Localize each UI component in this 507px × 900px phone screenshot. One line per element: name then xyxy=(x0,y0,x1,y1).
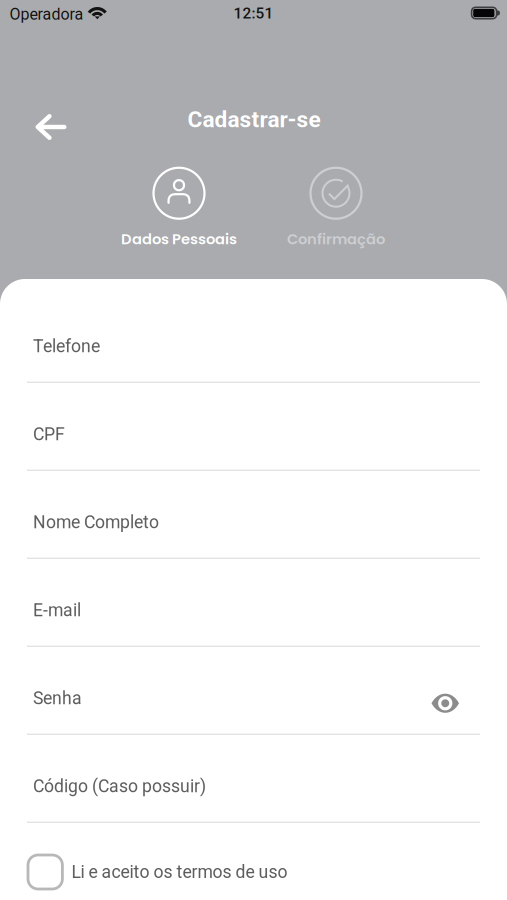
staticText: Operadora xyxy=(9,5,83,24)
staticText: Código (Caso possuir) xyxy=(33,776,206,797)
staticText: Telefone xyxy=(33,336,100,357)
button[interactable]: Voltar xyxy=(26,104,76,150)
button[interactable]: Dados Pessoais xyxy=(121,168,237,249)
staticText: Li e aceito os termos de uso xyxy=(71,862,287,882)
button[interactable]: Li e aceito os termos de uso xyxy=(0,823,507,889)
staticText: Dados Pessoais xyxy=(121,229,237,249)
button[interactable]: Confirmação xyxy=(287,168,385,249)
staticText: E-mail xyxy=(33,600,81,621)
button[interactable]: Mostrar senha xyxy=(421,686,480,720)
staticText: Confirmação xyxy=(287,229,385,249)
staticText: CPF xyxy=(33,424,65,445)
staticText: Cadastrar-se xyxy=(187,106,320,133)
staticText: Nome Completo xyxy=(33,512,159,533)
staticText: 12:51 xyxy=(233,4,273,22)
staticText: Senha xyxy=(33,688,82,709)
